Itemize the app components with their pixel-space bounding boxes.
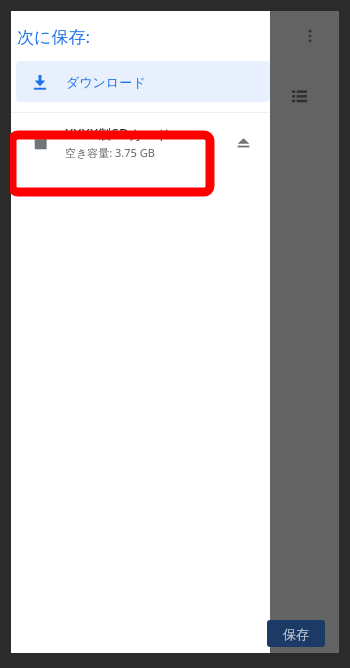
- button[interactable]: ダウンロード: [16, 61, 270, 102]
- button[interactable]: Eject: [228, 127, 258, 157]
- staticText: XXXX製SDカード: [65, 125, 170, 143]
- button[interactable]: 保存: [267, 620, 325, 647]
- staticText: 空き容量: 3.75 GB: [65, 145, 155, 160]
- button[interactable]: XXXX製SDカード: [11, 113, 270, 171]
- button[interactable]: More options: [298, 24, 322, 48]
- staticText: 保存: [283, 626, 309, 642]
- staticText: ダウンロード: [66, 74, 146, 90]
- button[interactable]: List view: [287, 83, 311, 107]
- staticText: 次に保存:: [17, 25, 90, 48]
